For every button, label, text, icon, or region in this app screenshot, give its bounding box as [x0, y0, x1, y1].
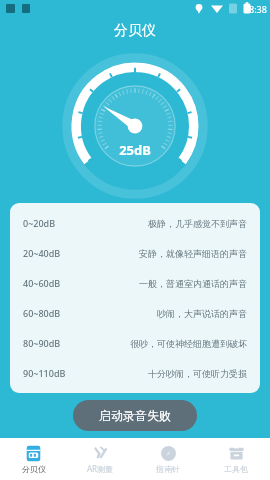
- staticText: 20~40dB: [23, 247, 61, 259]
- staticText: 分贝仪: [22, 464, 46, 474]
- staticText: 25dB: [119, 141, 151, 159]
- button[interactable]: 工具包: [202, 438, 270, 480]
- staticText: 40~60dB: [23, 277, 61, 289]
- staticText: AR测量: [87, 463, 114, 474]
- staticText: 工具包: [224, 464, 248, 474]
- staticText: 90~110dB: [23, 367, 66, 379]
- staticText: 十分吵闹，可使听力受损: [148, 368, 247, 379]
- staticText: 很吵，可使神经细胞遭到破坏: [130, 338, 247, 349]
- button[interactable]: 20~40dB: [10, 238, 260, 268]
- button[interactable]: 60~80dB: [10, 298, 260, 328]
- staticText: 60~80dB: [23, 307, 61, 319]
- staticText: 极静，几乎感觉不到声音: [148, 218, 247, 229]
- button[interactable]: 0~20dB: [10, 208, 260, 238]
- button[interactable]: 80~90dB: [10, 328, 260, 358]
- button[interactable]: 40~60dB: [10, 268, 260, 298]
- staticText: 安静，就像轻声细语的声音: [139, 248, 247, 259]
- staticText: 分贝仪: [114, 22, 156, 40]
- button[interactable]: 90~110dB: [10, 358, 260, 388]
- staticText: 0~20dB: [23, 217, 56, 229]
- button[interactable]: AR测量: [67, 438, 134, 480]
- staticText: 启动录音失败: [99, 408, 171, 423]
- staticText: 指南针: [156, 464, 180, 474]
- button[interactable]: 启动录音失败: [73, 400, 197, 431]
- button[interactable]: 分贝仪: [0, 438, 67, 480]
- button[interactable]: 指南针: [134, 438, 202, 480]
- staticText: 一般，普通室内通话的声音: [139, 278, 247, 289]
- staticText: 80~90dB: [23, 337, 61, 349]
- staticText: 8:38: [249, 3, 267, 15]
- staticText: 吵闹，大声说话的声音: [157, 308, 247, 319]
